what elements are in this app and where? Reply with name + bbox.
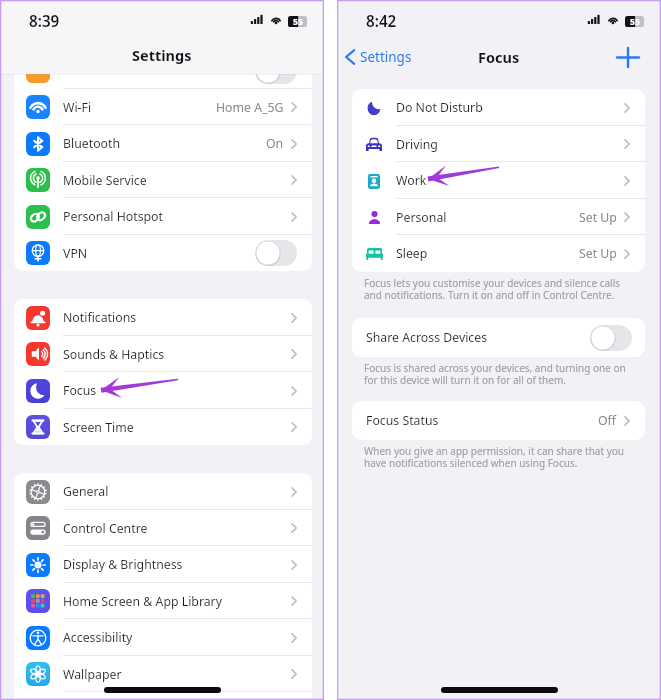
staticText: 8:42 bbox=[366, 11, 397, 32]
staticText: Wallpaper bbox=[63, 666, 122, 683]
staticText: On bbox=[266, 135, 284, 152]
staticText: Control Centre bbox=[63, 520, 148, 537]
button[interactable]: Personal Hotspot bbox=[14, 198, 312, 235]
button[interactable]: Home Screen & App Library bbox=[14, 583, 312, 619]
button[interactable]: Work bbox=[352, 162, 645, 199]
button[interactable]: Display & Brightness bbox=[14, 546, 312, 583]
staticText: Home A_5G bbox=[216, 99, 284, 116]
staticText: Off bbox=[598, 412, 617, 429]
button[interactable]: Sleep bbox=[352, 235, 645, 272]
staticText: When you give an app permission, it can … bbox=[364, 444, 629, 470]
button[interactable]: Screen Time bbox=[14, 409, 312, 445]
staticText: Bluetooth bbox=[63, 135, 121, 152]
button[interactable]: Personal bbox=[352, 199, 645, 235]
button[interactable]: Mobile Service bbox=[14, 162, 312, 198]
staticText: Focus bbox=[478, 47, 520, 67]
button[interactable] bbox=[14, 52, 312, 89]
button[interactable] bbox=[590, 325, 632, 351]
staticText: 55 bbox=[293, 16, 303, 27]
staticText: Do Not Disturb bbox=[396, 99, 483, 116]
button[interactable]: Sounds & Haptics bbox=[14, 336, 312, 372]
staticText: Work bbox=[396, 172, 427, 189]
button[interactable]: Driving bbox=[352, 126, 645, 162]
button[interactable]: VPN bbox=[14, 235, 312, 271]
staticText: Set Up bbox=[579, 209, 617, 226]
button[interactable]: Focus Status bbox=[352, 401, 645, 440]
button[interactable]: Siri & Search bbox=[14, 692, 312, 700]
staticText: Wi-Fi bbox=[63, 99, 92, 116]
staticText: Notifications bbox=[63, 309, 137, 326]
staticText: Mobile Service bbox=[63, 172, 147, 189]
staticText: Driving bbox=[396, 136, 438, 153]
button[interactable] bbox=[255, 240, 297, 266]
staticText: 55 bbox=[630, 16, 640, 27]
button[interactable]: Do Not Disturb bbox=[352, 89, 645, 126]
staticText: Sleep bbox=[396, 245, 428, 262]
button[interactable]: Control Centre bbox=[14, 510, 312, 546]
button[interactable]: Share Across Devices bbox=[352, 318, 645, 357]
staticText: Accessibility bbox=[63, 629, 133, 646]
staticText: Focus lets you customise your devices an… bbox=[364, 276, 629, 302]
staticText: Screen Time bbox=[63, 419, 134, 436]
staticText: Personal bbox=[396, 209, 447, 226]
staticText: Settings bbox=[132, 45, 192, 65]
staticText: Home Screen & App Library bbox=[63, 593, 222, 610]
staticText: Settings bbox=[360, 48, 412, 66]
button[interactable]: Accessibility bbox=[14, 619, 312, 656]
button[interactable]: Wi-Fi bbox=[14, 89, 312, 125]
button[interactable]: Focus bbox=[14, 372, 312, 409]
staticText: Focus Status bbox=[366, 412, 439, 429]
button[interactable] bbox=[255, 58, 297, 84]
staticText: Personal Hotspot bbox=[63, 208, 163, 225]
staticText: 8:39 bbox=[29, 11, 60, 32]
button[interactable]: Bluetooth bbox=[14, 125, 312, 162]
button[interactable]: General bbox=[14, 473, 312, 510]
button[interactable]: Settings bbox=[345, 48, 412, 66]
staticText: Sounds & Haptics bbox=[63, 346, 165, 363]
button[interactable]: Add Focus bbox=[615, 44, 641, 70]
button[interactable]: Notifications bbox=[14, 299, 312, 336]
staticText: Focus is shared across your devices, and… bbox=[364, 361, 629, 387]
staticText: Set Up bbox=[579, 245, 617, 262]
button[interactable]: Wallpaper bbox=[14, 656, 312, 692]
staticText: Focus bbox=[63, 382, 97, 399]
staticText: Display & Brightness bbox=[63, 556, 183, 573]
staticText: Share Across Devices bbox=[366, 329, 488, 346]
staticText: General bbox=[63, 483, 109, 500]
staticText: VPN bbox=[63, 245, 88, 262]
